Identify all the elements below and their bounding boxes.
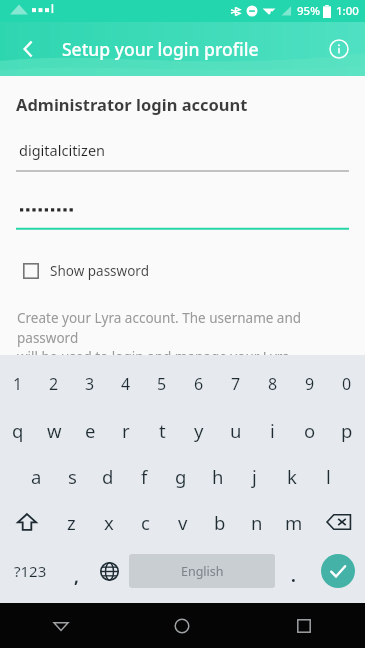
button[interactable]: 1	[0, 361, 36, 407]
staticText: a	[31, 464, 42, 489]
staticText: h	[212, 464, 224, 489]
staticText: 5	[157, 373, 167, 395]
button[interactable]: s	[54, 453, 90, 499]
staticText: Show password	[50, 262, 149, 280]
button[interactable]: 8	[254, 361, 291, 407]
button[interactable]: x	[90, 499, 127, 545]
button[interactable]: 3	[72, 361, 108, 407]
staticText: ?123	[14, 561, 47, 581]
button[interactable]: i	[254, 407, 291, 453]
button[interactable]: c	[127, 499, 164, 545]
button[interactable]: t	[144, 407, 180, 453]
button[interactable]: b	[201, 499, 238, 545]
button[interactable]: k	[273, 453, 310, 499]
staticText: 4	[121, 373, 131, 395]
staticText: digitalcitizen	[19, 140, 106, 160]
button[interactable]: l	[310, 453, 347, 499]
button[interactable]	[16, 200, 349, 230]
staticText: c	[141, 510, 150, 535]
staticText: x	[104, 510, 114, 535]
staticText: m	[285, 510, 303, 535]
button[interactable]: y	[180, 407, 217, 453]
button[interactable]: Back	[0, 603, 121, 648]
button[interactable]: p	[328, 407, 365, 453]
staticText: 7	[231, 373, 241, 395]
button[interactable]: ,	[61, 545, 92, 597]
button[interactable]: Enter	[310, 545, 365, 597]
staticText: l	[326, 464, 331, 489]
button[interactable]: h	[199, 453, 236, 499]
button[interactable]: Home	[121, 603, 243, 648]
staticText: r	[122, 418, 130, 443]
staticText: 2	[49, 373, 59, 395]
staticText: i	[270, 418, 275, 443]
button[interactable]: Show password	[16, 258, 349, 284]
button[interactable]: 5	[144, 361, 180, 407]
staticText: w	[47, 418, 62, 443]
staticText: English	[181, 563, 224, 580]
button[interactable]: English	[129, 554, 275, 588]
staticText: s	[68, 464, 77, 489]
staticText: b	[214, 510, 226, 535]
staticText: Administrator login account	[16, 93, 248, 115]
staticText: n	[251, 510, 263, 535]
staticText: y	[194, 418, 204, 443]
button[interactable]: 9	[291, 361, 328, 407]
button[interactable]: d	[90, 453, 126, 499]
button[interactable]: Recent apps	[243, 603, 365, 648]
button[interactable]: Information	[319, 29, 359, 69]
staticText: 1:00	[336, 3, 359, 19]
staticText: v	[178, 510, 188, 535]
button[interactable]: 2	[36, 361, 72, 407]
staticText: g	[175, 464, 187, 489]
button[interactable]: digitalcitizen	[16, 140, 349, 172]
button[interactable]: Change language	[92, 545, 127, 597]
button[interactable]: Backspace	[312, 499, 365, 545]
button[interactable]: Back	[8, 29, 48, 69]
button[interactable]: f	[126, 453, 162, 499]
staticText: 9	[305, 373, 315, 395]
button[interactable]: v	[164, 499, 201, 545]
button[interactable]: w	[36, 407, 72, 453]
button[interactable]: n	[238, 499, 275, 545]
button[interactable]: e	[72, 407, 108, 453]
button[interactable]: r	[108, 407, 144, 453]
staticText: 3	[85, 373, 95, 395]
button[interactable]: 0	[328, 361, 365, 407]
staticText: 1	[13, 373, 23, 395]
button[interactable]: .	[277, 545, 310, 597]
button[interactable]: ?123	[0, 545, 61, 597]
staticText: e	[85, 418, 96, 443]
button[interactable]: Shift	[0, 499, 53, 545]
staticText: p	[341, 418, 353, 443]
staticText: t	[159, 418, 166, 443]
staticText: u	[230, 418, 242, 443]
staticText: 8	[268, 373, 278, 395]
button[interactable]: o	[291, 407, 328, 453]
button[interactable]: 4	[108, 361, 144, 407]
button[interactable]: j	[236, 453, 273, 499]
button[interactable]: 7	[217, 361, 254, 407]
staticText: d	[102, 464, 114, 489]
staticText: .	[291, 564, 296, 587]
button[interactable]: a	[18, 453, 54, 499]
button[interactable]: z	[53, 499, 90, 545]
button[interactable]: g	[162, 453, 199, 499]
staticText: 95%	[297, 3, 320, 19]
staticText: Create your Lyra account. The username a…	[17, 309, 349, 355]
button[interactable]: q	[0, 407, 36, 453]
staticText: j	[252, 464, 257, 489]
staticText: z	[67, 510, 76, 535]
staticText: f	[141, 464, 148, 489]
staticText: Setup your login profile	[62, 37, 259, 61]
staticText: k	[287, 464, 297, 489]
staticText: 0	[342, 373, 352, 395]
button[interactable]: u	[217, 407, 254, 453]
button[interactable]: 6	[180, 361, 217, 407]
staticText: ,	[74, 565, 79, 588]
button[interactable]: m	[275, 499, 312, 545]
staticText: q	[12, 418, 24, 443]
staticText: 6	[194, 373, 204, 395]
staticText: o	[304, 418, 316, 443]
